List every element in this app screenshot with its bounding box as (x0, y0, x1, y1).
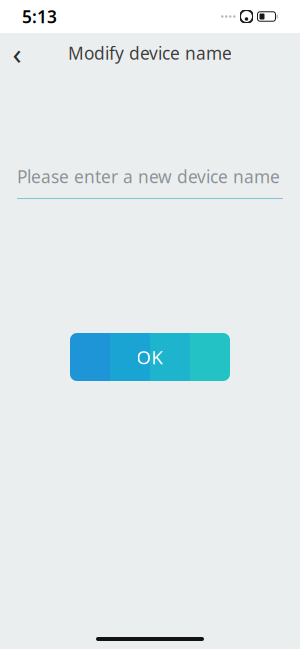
staticText: OK (136, 345, 163, 369)
staticText: Modify device name (68, 41, 232, 64)
button[interactable]: Back (0, 36, 34, 70)
button[interactable]: OK (70, 333, 230, 381)
staticText: Please enter a new device name (17, 165, 280, 188)
staticText: 5:13 (22, 5, 57, 28)
staticText: ‹ (12, 33, 21, 72)
